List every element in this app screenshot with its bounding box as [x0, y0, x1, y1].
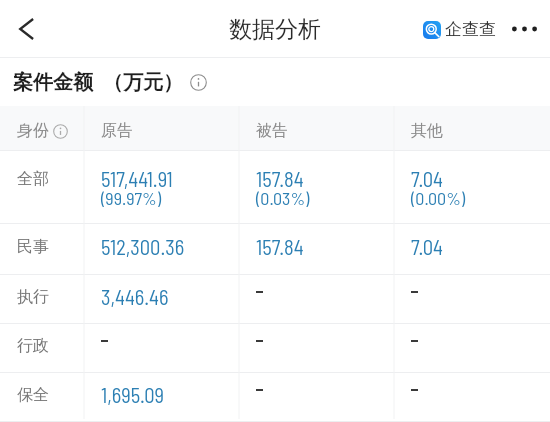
- staticText: 案件金额: [13, 70, 93, 95]
- staticText: 7.04: [411, 166, 443, 191]
- button[interactable]: 保全: [0, 373, 550, 421]
- staticText: 157.84: [256, 234, 304, 259]
- staticText: 157.84: [256, 166, 304, 191]
- staticText: 3,446.46: [101, 284, 169, 309]
- staticText: 7.04: [411, 234, 443, 259]
- staticText: 517,441.91: [101, 166, 173, 191]
- staticText: 行政: [17, 336, 49, 356]
- staticText: 企查查: [445, 19, 496, 40]
- button[interactable]: More options: [504, 10, 544, 48]
- staticText: 民事: [17, 237, 49, 257]
- staticText: (0.03%): [256, 187, 310, 209]
- button[interactable]: 民事: [0, 224, 550, 274]
- staticText: 1,695.09: [101, 382, 164, 407]
- staticText: (99.97%): [101, 187, 161, 209]
- button[interactable]: 执行: [0, 275, 550, 323]
- staticText: 被告: [256, 121, 288, 141]
- button[interactable]: Info: [190, 74, 207, 91]
- staticText: （万元）: [103, 70, 183, 95]
- staticText: 512,300.36: [101, 234, 185, 259]
- staticText: 身份: [17, 121, 49, 141]
- button[interactable]: 全部: [0, 151, 550, 223]
- staticText: (0.00%): [411, 187, 466, 209]
- staticText: 执行: [17, 287, 49, 307]
- staticText: 全部: [17, 169, 49, 189]
- button[interactable]: Back: [7, 10, 45, 48]
- staticText: 保全: [17, 385, 49, 405]
- button[interactable]: 企查查: [423, 13, 496, 46]
- button[interactable]: 行政: [0, 324, 550, 372]
- staticText: 数据分析: [229, 15, 321, 44]
- staticText: 其他: [411, 121, 443, 141]
- staticText: 原告: [101, 121, 133, 141]
